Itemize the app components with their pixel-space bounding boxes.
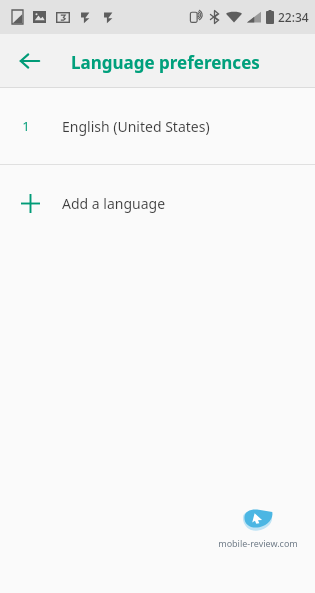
staticText: Language preferences <box>71 51 260 74</box>
staticText: mobile-review.com <box>218 537 298 549</box>
staticText: 22:34 <box>278 9 309 25</box>
staticText: English (United States) <box>62 117 210 136</box>
button[interactable]: Add a language <box>0 165 315 241</box>
button[interactable]: Back <box>8 39 52 83</box>
staticText: Add a language <box>62 194 166 213</box>
button[interactable]: 1 <box>0 88 315 164</box>
staticText: 1 <box>22 117 30 135</box>
